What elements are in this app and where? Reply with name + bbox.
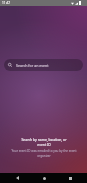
- button[interactable]: Back: [7, 173, 27, 183]
- staticText: 11:47: [2, 1, 11, 5]
- button[interactable]: Home: [34, 173, 54, 183]
- staticText: Your event ID was emailed to you by the …: [11, 149, 77, 157]
- button[interactable]: Search for an event: [4, 59, 83, 71]
- button[interactable]: Recent apps: [60, 173, 80, 183]
- staticText: Search by name, location, or event ID: [21, 137, 67, 147]
- staticText: Search for an event: [16, 63, 49, 68]
